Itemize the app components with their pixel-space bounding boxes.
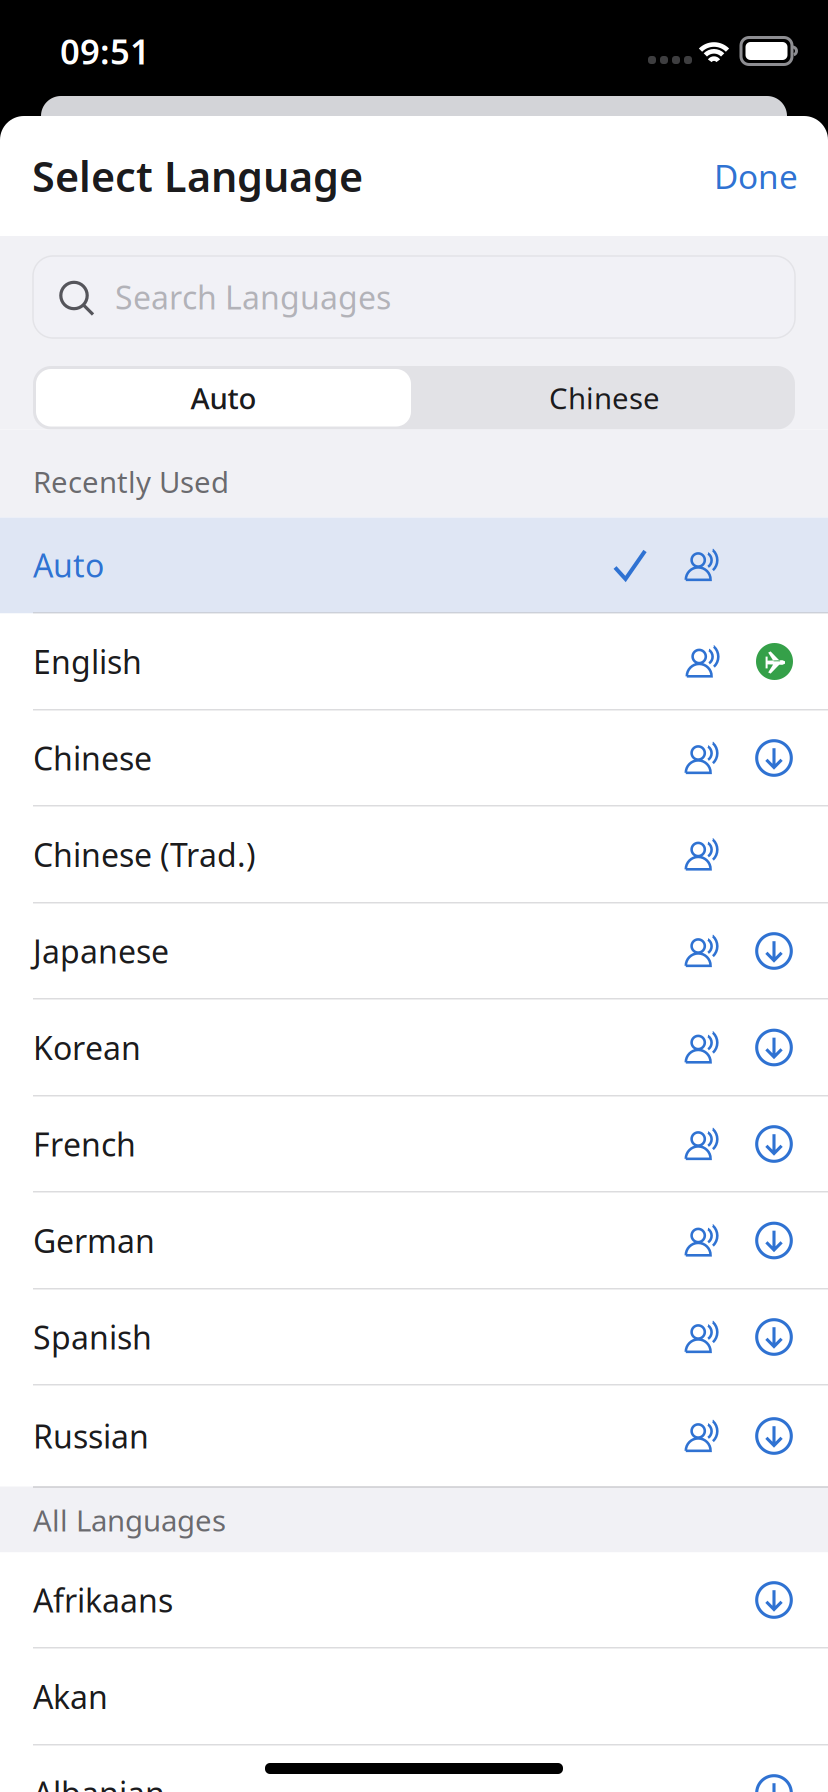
staticText: All Languages — [33, 1500, 226, 1539]
button[interactable]: English available offline — [756, 643, 793, 680]
button[interactable]: Chinese — [0, 710, 828, 806]
button[interactable]: French — [0, 1096, 828, 1192]
staticText: 09:51 — [60, 28, 150, 74]
staticText: Russian — [33, 1415, 149, 1457]
button[interactable]: Albanian — [0, 1745, 828, 1792]
staticText: Recently Used — [33, 462, 229, 501]
button[interactable]: Speak Japanese — [685, 934, 720, 968]
button[interactable]: Speak German — [685, 1223, 720, 1257]
button[interactable]: Download Albanian — [755, 1774, 793, 1792]
staticText: Auto — [190, 378, 256, 417]
staticText: Albanian — [33, 1772, 165, 1792]
button[interactable]: Download German — [755, 1221, 793, 1259]
staticText: Chinese (Trad.) — [33, 833, 256, 876]
button[interactable]: Auto — [33, 366, 414, 429]
button[interactable]: Speak Russian — [685, 1419, 720, 1453]
button[interactable]: Download Korean — [755, 1028, 793, 1066]
staticText: English — [33, 640, 142, 683]
button[interactable]: Afrikaans — [0, 1552, 828, 1648]
button[interactable]: German — [0, 1192, 828, 1289]
staticText: Select Language — [32, 149, 363, 203]
staticText: German — [33, 1219, 155, 1262]
button[interactable]: Done — [714, 154, 798, 198]
button[interactable]: Japanese — [0, 903, 828, 999]
staticText: Spanish — [33, 1316, 152, 1358]
staticText: Done — [714, 154, 798, 198]
button[interactable]: Download Afrikaans — [755, 1581, 793, 1619]
staticText: French — [33, 1123, 136, 1165]
button[interactable]: Speak Chinese — [685, 741, 720, 775]
staticText: Akan — [33, 1675, 108, 1718]
button[interactable]: Speak Chinese (Trad.) — [685, 837, 720, 871]
button[interactable]: Download French — [755, 1125, 793, 1163]
button[interactable]: Speak Auto — [685, 548, 720, 582]
staticText: Chinese — [33, 737, 152, 779]
button[interactable]: Download Chinese — [755, 739, 793, 777]
button[interactable]: Speak Spanish — [685, 1320, 720, 1354]
button[interactable]: Korean — [0, 999, 828, 1096]
staticText: Chinese — [549, 378, 660, 417]
button[interactable]: Search Languages — [33, 256, 795, 338]
button[interactable]: Akan — [0, 1648, 828, 1745]
button[interactable]: English — [0, 613, 828, 710]
button[interactable]: Chinese — [414, 366, 795, 429]
button[interactable]: Spanish — [0, 1289, 828, 1385]
button[interactable]: Speak French — [685, 1127, 720, 1161]
staticText: Korean — [33, 1026, 141, 1069]
staticText: Auto — [33, 544, 104, 586]
button[interactable]: Chinese (Trad.) — [0, 806, 828, 903]
staticText: Search Languages — [115, 276, 391, 318]
button[interactable]: Speak English — [686, 644, 721, 678]
button[interactable]: Auto — [0, 517, 828, 613]
button[interactable]: Speak Korean — [685, 1030, 720, 1064]
button[interactable]: Russian — [0, 1385, 828, 1486]
staticText: Japanese — [33, 930, 169, 972]
button[interactable]: Download Russian — [755, 1417, 793, 1455]
staticText: Afrikaans — [33, 1579, 173, 1621]
button[interactable]: Download Spanish — [755, 1318, 793, 1356]
button[interactable]: Download Japanese — [755, 932, 793, 970]
